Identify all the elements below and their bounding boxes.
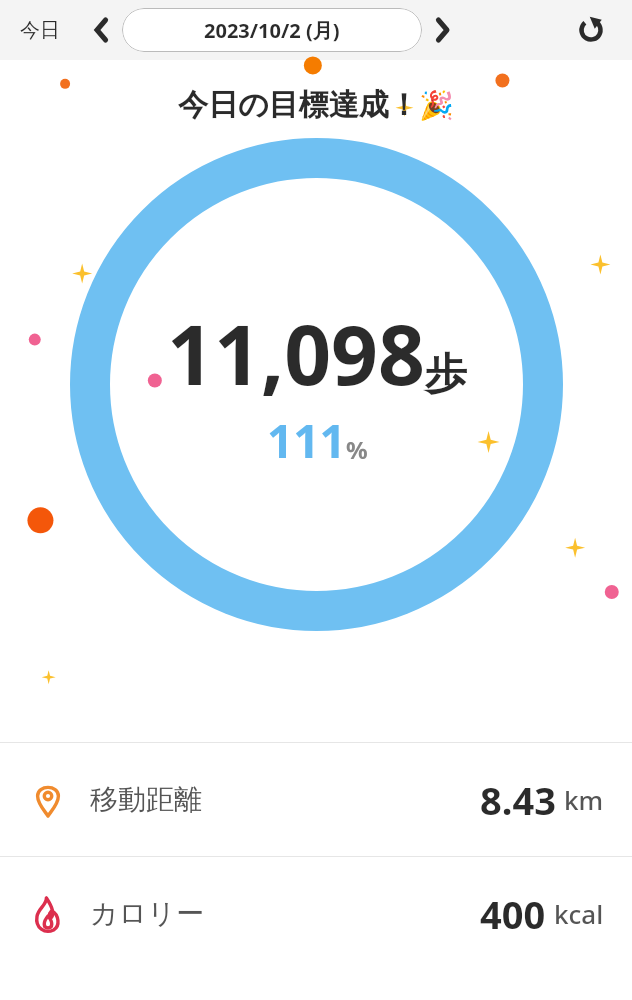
staticText: 今日 [20,18,60,43]
staticText: 移動距離 [90,782,202,817]
button[interactable]: 2023/10/2 (月) [122,8,422,52]
staticText: kcal [554,896,604,931]
button[interactable]: Refresh [568,7,614,53]
button[interactable]: カロリー [0,857,632,970]
staticText: 今日の目標達成！ [178,86,419,124]
staticText: 400 [480,888,546,940]
staticText: 11,098 [167,297,425,409]
staticText: 2023/10/2 (月) [204,17,340,44]
button[interactable]: Previous day [82,10,122,50]
staticText: 111 [267,409,346,472]
button[interactable]: 移動距離 [0,743,632,856]
staticText: 8.43 [480,774,556,826]
staticText: 歩 [425,348,467,401]
button[interactable]: 今日 [20,18,60,43]
staticText: % [346,433,368,466]
staticText: km [564,782,604,817]
staticText: カロリー [90,896,204,931]
staticText: 🎉 [419,89,454,122]
button[interactable]: Next day [422,10,462,50]
